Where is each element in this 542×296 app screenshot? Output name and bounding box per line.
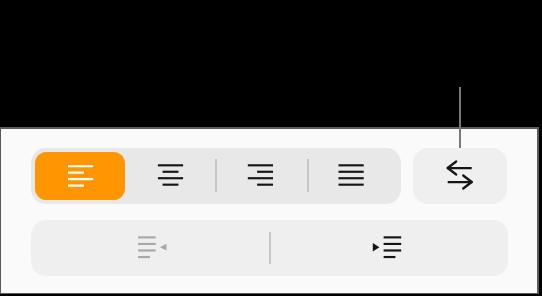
button[interactable]: Justify — [305, 148, 396, 204]
button[interactable]: Increase indent — [271, 220, 507, 276]
button[interactable]: Decrease indent — [33, 220, 269, 276]
button[interactable]: Text direction — [413, 148, 507, 204]
button[interactable]: Align left — [35, 152, 125, 200]
button[interactable]: Align right — [215, 148, 305, 204]
button[interactable]: Align center — [125, 148, 215, 204]
